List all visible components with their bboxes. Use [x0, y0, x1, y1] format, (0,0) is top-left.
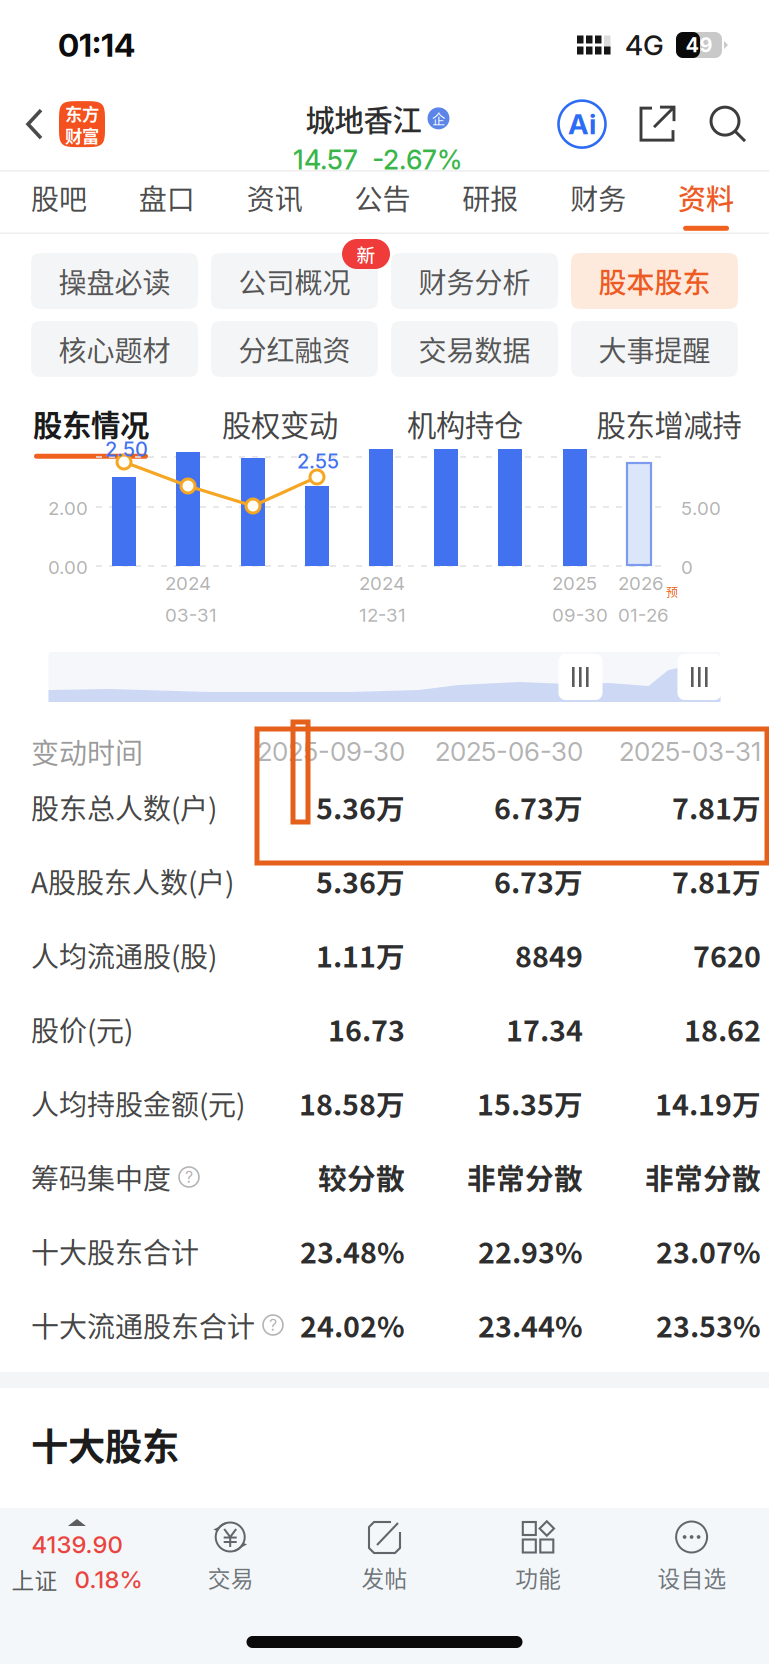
staticText: 14.57 -2.67%	[293, 144, 462, 176]
staticText: 资讯	[247, 177, 303, 218]
staticText: 0	[681, 556, 693, 579]
staticText: 城地香江	[305, 97, 421, 140]
staticText: 股东情况	[33, 402, 149, 445]
staticText: 股本股东	[598, 261, 710, 301]
staticText: A股股东人数(户)	[31, 861, 234, 901]
staticText: 4139.90	[31, 1530, 122, 1559]
staticText: 7.81万	[672, 860, 761, 902]
button[interactable]: Share	[607, 105, 681, 143]
button[interactable]: 功能	[461, 1519, 615, 1619]
button[interactable]: 资料	[652, 165, 760, 239]
staticText: 2025-03-31	[619, 736, 761, 767]
button[interactable]: 股东增减持	[595, 392, 743, 459]
button[interactable]: 股本股东	[571, 253, 738, 309]
staticText: 交易数据	[418, 329, 530, 369]
button[interactable]: 操盘必读	[31, 253, 198, 309]
staticText: 非常分散	[645, 1156, 761, 1198]
button[interactable]: 资讯	[221, 165, 329, 239]
staticText: 2024	[359, 572, 405, 595]
staticText: 16.73	[328, 1008, 405, 1050]
button[interactable]: 股东情况	[32, 392, 150, 459]
staticText: 7.81万	[672, 786, 761, 828]
staticText: 49	[685, 33, 712, 57]
button[interactable]: 研报	[436, 165, 544, 239]
button[interactable]: 财务	[544, 165, 652, 239]
button[interactable]: 分红融资	[211, 321, 378, 377]
button[interactable]: 公司概况	[211, 253, 378, 309]
button[interactable]: 机构持仓	[406, 392, 524, 459]
staticText: 财务	[570, 177, 626, 218]
staticText: 12-31	[359, 604, 406, 626]
staticText: 变动时间	[31, 731, 143, 772]
button[interactable]: AI assistant	[557, 99, 607, 149]
staticText: 2025-09-30	[257, 736, 405, 767]
staticText: 4G	[625, 28, 664, 62]
staticText: 2025	[552, 572, 597, 595]
staticText: 23.07%	[656, 1230, 761, 1272]
staticText: 6.73万	[494, 786, 583, 828]
staticText: 大事提醒	[598, 329, 710, 369]
staticText: 筹码集中度	[31, 1157, 171, 1197]
staticText: 09-30	[552, 604, 608, 626]
button[interactable]: 股权变动	[221, 392, 339, 459]
staticText: 5.36万	[316, 786, 405, 828]
staticText: 0.00	[48, 556, 88, 579]
staticText: 上证	[11, 1563, 57, 1596]
staticText: 较分散	[318, 1156, 405, 1198]
button[interactable]: 股吧	[5, 165, 113, 239]
staticText: 核心题材	[58, 329, 170, 369]
staticText: 预	[666, 583, 678, 600]
staticText: 14.19万	[655, 1082, 761, 1124]
staticText: 操盘必读	[58, 261, 170, 301]
staticText: 新	[356, 240, 375, 267]
button[interactable]: 大事提醒	[571, 321, 738, 377]
staticText: 5.36万	[316, 860, 405, 902]
staticText: 人均流通股(股)	[31, 935, 217, 975]
staticText: 24.02%	[300, 1304, 405, 1346]
staticText: 23.44%	[478, 1304, 583, 1346]
staticText: 研报	[462, 177, 518, 218]
button[interactable]: Back	[0, 84, 59, 164]
staticText: ?	[185, 1167, 193, 1187]
staticText: 01:14	[58, 26, 135, 64]
staticText: 资料	[678, 177, 734, 218]
button[interactable]: 财务分析	[391, 253, 558, 309]
staticText: 23.48%	[300, 1230, 405, 1272]
staticText: 股东总人数(户)	[31, 787, 217, 827]
staticText: 6.73万	[494, 860, 583, 902]
staticText: 十大股东	[31, 1417, 179, 1472]
button[interactable]: 4139.90	[0, 1519, 154, 1619]
button[interactable]: 设自选	[615, 1519, 769, 1619]
staticText: 东方	[65, 100, 99, 126]
button[interactable]: 交易	[154, 1519, 308, 1619]
staticText: 2.00	[48, 497, 88, 520]
staticText: 设自选	[658, 1561, 727, 1594]
staticText: 公告	[354, 177, 410, 218]
button[interactable]: 公告	[329, 165, 436, 239]
staticText: 功能	[515, 1561, 561, 1594]
staticText: 2024	[165, 572, 211, 595]
staticText: 18.58万	[299, 1082, 405, 1124]
staticText: 03-31	[165, 604, 217, 626]
staticText: 盘口	[139, 177, 195, 218]
button[interactable]: 发帖	[308, 1519, 461, 1619]
staticText: 2.55	[297, 449, 339, 473]
button[interactable]: 盘口	[113, 165, 221, 239]
staticText: 0.18%	[74, 1565, 142, 1594]
button[interactable]: East Money	[59, 101, 105, 147]
staticText: 人均持股金额(元)	[31, 1083, 245, 1123]
button[interactable]: 交易数据	[391, 321, 558, 377]
staticText: 机构持仓	[407, 402, 523, 445]
staticText: 公司概况	[238, 261, 350, 301]
staticText: 非常分散	[467, 1156, 583, 1198]
staticText: 企	[432, 109, 445, 128]
button[interactable]: 核心题材	[31, 321, 198, 377]
staticText: 十大股东合计	[31, 1231, 199, 1271]
staticText: 17.34	[506, 1008, 583, 1050]
staticText: 2025-06-30	[435, 736, 583, 767]
staticText: 分红融资	[238, 329, 350, 369]
staticText: 23.53%	[656, 1304, 761, 1346]
button[interactable]: Search	[681, 105, 769, 143]
staticText: 01-26	[618, 604, 669, 626]
staticText: 股吧	[31, 177, 87, 218]
